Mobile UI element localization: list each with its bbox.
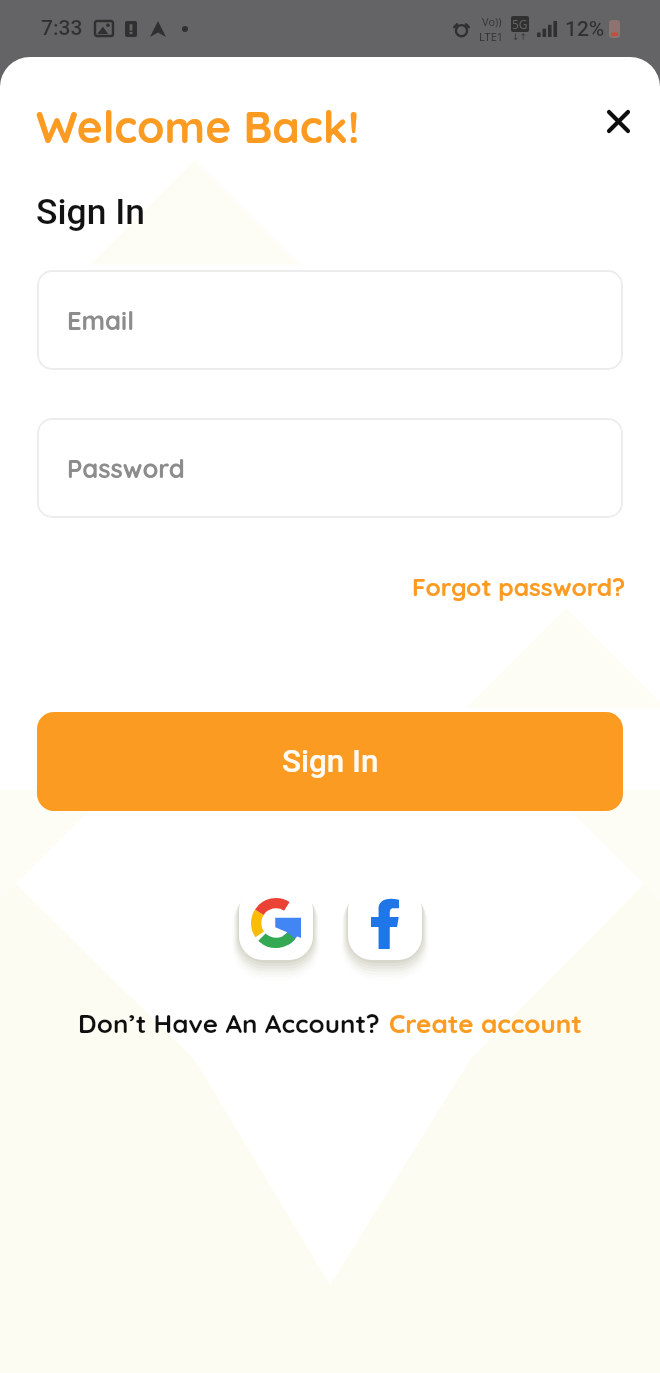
staticText: Sign In — [36, 191, 145, 233]
button[interactable]: Sign In — [37, 712, 623, 811]
staticText: 12% — [565, 17, 605, 42]
button[interactable]: Sign in with Facebook — [348, 886, 422, 960]
staticText: Password — [67, 452, 185, 484]
staticText: Vo)) — [482, 14, 502, 29]
staticText: Don’t Have An Account? — [78, 1007, 380, 1040]
button[interactable]: Password — [37, 418, 623, 518]
staticText: 7:33 — [41, 16, 83, 41]
button[interactable]: Sign in with Google — [239, 886, 313, 960]
staticText: 5G — [512, 16, 528, 32]
staticText: Welcome Back! — [36, 99, 360, 154]
staticText: Email — [67, 304, 135, 336]
button[interactable]: Forgot password? — [412, 571, 626, 602]
staticText: ↓↑ — [512, 32, 528, 42]
staticText: Sign In — [282, 743, 379, 780]
button[interactable]: Close — [596, 99, 641, 144]
button[interactable]: Email — [37, 270, 623, 370]
staticText: LTE1 — [479, 29, 504, 44]
button[interactable]: Create account — [389, 1007, 582, 1040]
